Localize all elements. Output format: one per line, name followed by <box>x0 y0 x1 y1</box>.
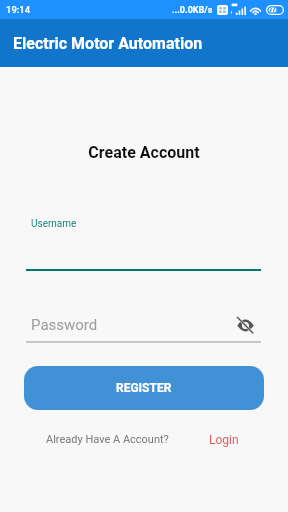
button[interactable]: Show password <box>232 312 258 338</box>
staticText: Password <box>31 316 98 334</box>
button[interactable]: REGISTER <box>24 366 264 410</box>
button[interactable]: Username <box>26 210 261 271</box>
staticText: ...0.0KB/s <box>172 5 213 16</box>
staticText: Create Account <box>0 143 288 162</box>
staticText: Already Have A Account? <box>46 433 169 446</box>
staticText: Electric Motor Automation <box>13 34 203 53</box>
button[interactable]: Login <box>209 433 239 447</box>
staticText: REGISTER <box>116 381 172 395</box>
button[interactable]: Password <box>26 308 261 343</box>
staticText: 19:14 <box>6 4 31 15</box>
staticText: Login <box>209 433 239 447</box>
staticText: Username <box>31 218 77 230</box>
